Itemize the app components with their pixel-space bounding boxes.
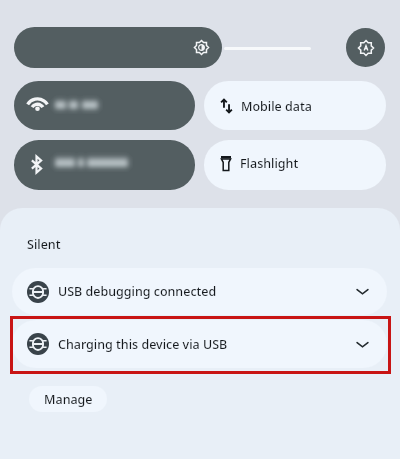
button[interactable]: Mobile data xyxy=(204,81,386,130)
button[interactable]: Manage xyxy=(29,386,107,412)
staticText: Flashlight xyxy=(240,155,299,172)
button[interactable]: Flashlight xyxy=(204,140,386,190)
staticText: Manage xyxy=(44,391,93,408)
button[interactable]: Bluetooth xyxy=(14,140,195,190)
button[interactable]: Brightness xyxy=(14,27,222,68)
staticText: Charging this device via USB xyxy=(58,336,228,353)
button[interactable]: Wi-Fi xyxy=(14,81,195,130)
staticText: Silent xyxy=(27,236,61,253)
button[interactable]: Auto brightness xyxy=(346,28,385,67)
staticText: Mobile data xyxy=(241,98,312,115)
staticText: USB debugging connected xyxy=(58,283,217,300)
button[interactable]: Charging this device via USB xyxy=(12,320,387,368)
button[interactable]: USB debugging connected xyxy=(12,268,387,315)
